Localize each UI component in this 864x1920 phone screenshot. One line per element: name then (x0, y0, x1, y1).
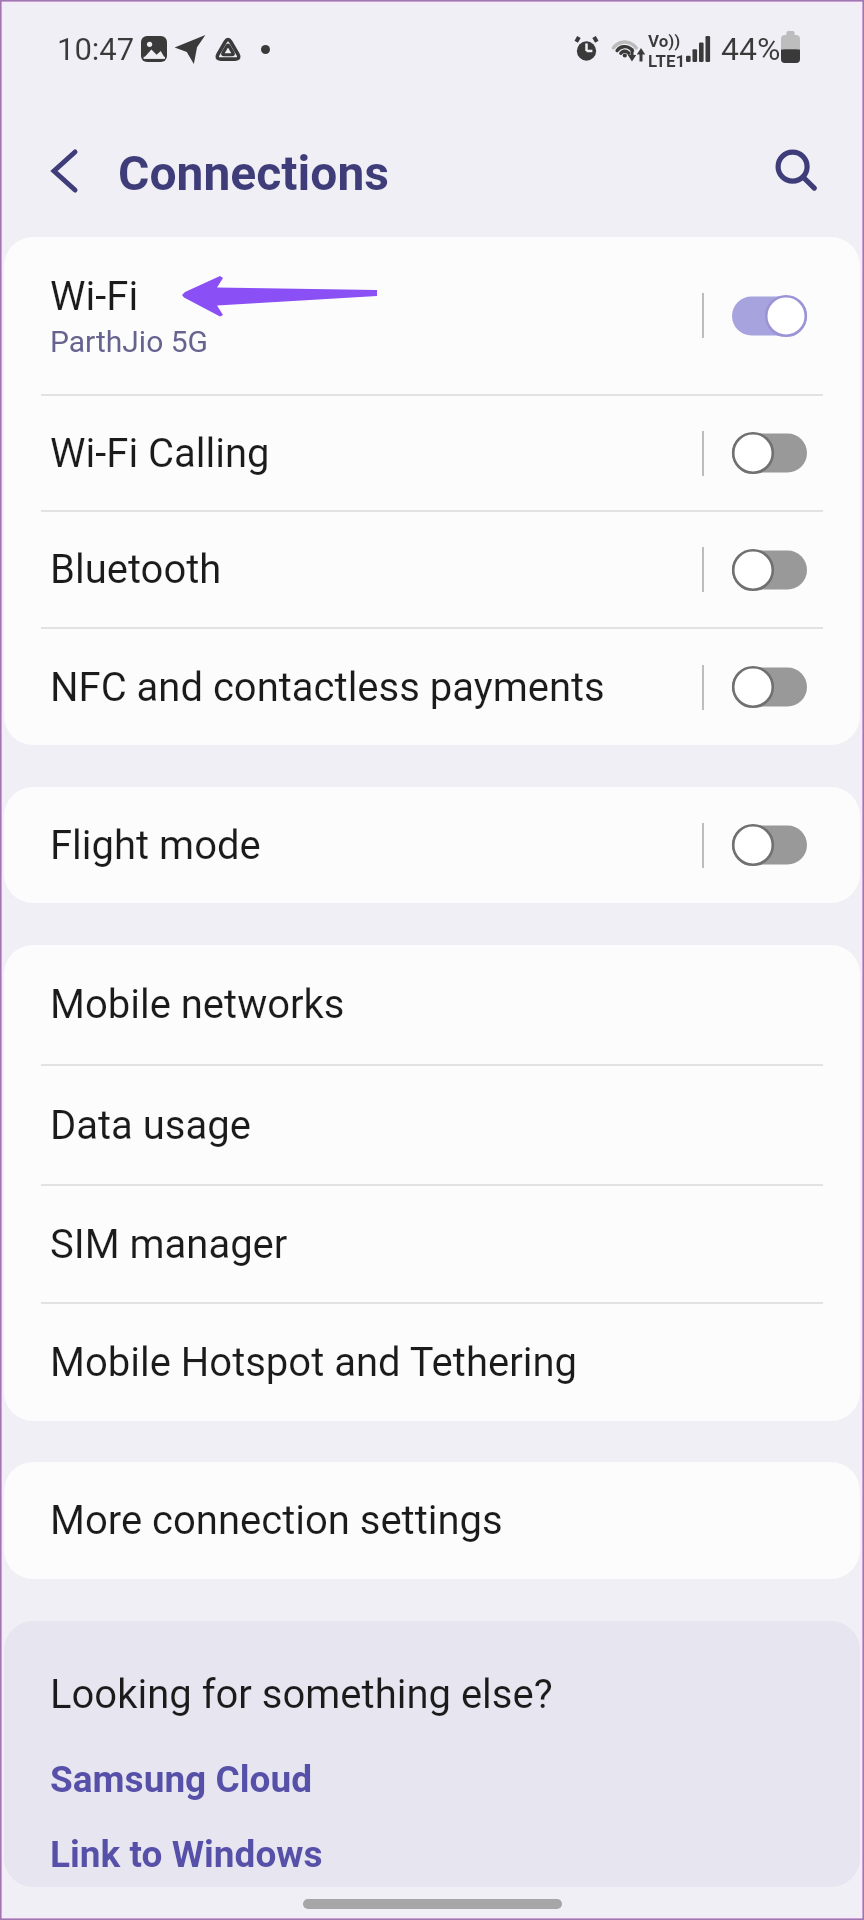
button[interactable]: Wi-Fi Calling (4, 396, 860, 510)
button[interactable]: Data usage (4, 1066, 860, 1184)
button[interactable]: Switch off (732, 548, 807, 592)
staticText: Samsung Cloud (50, 1758, 312, 1801)
staticText: 44% (721, 30, 781, 68)
staticText: 10:47 (57, 31, 135, 67)
button[interactable]: Switch on (732, 294, 807, 338)
staticText: Flight mode (50, 822, 261, 869)
staticText: Wi-Fi (50, 273, 139, 320)
button[interactable]: Samsung Cloud (4, 1752, 860, 1807)
button[interactable]: Back (25, 141, 85, 201)
button[interactable]: Flight mode (4, 787, 860, 903)
staticText: LTE1 (648, 51, 686, 71)
button[interactable]: Mobile networks (4, 945, 860, 1064)
staticText: Connections (118, 145, 390, 201)
button[interactable]: Search (760, 136, 832, 208)
staticText: Vo)) (648, 31, 681, 51)
button[interactable]: Link to Windows (4, 1827, 860, 1882)
button[interactable]: Switch off (732, 665, 807, 709)
button[interactable]: SIM manager (4, 1186, 860, 1302)
button[interactable]: Wi-Fi (4, 237, 860, 394)
button[interactable]: Switch off (732, 823, 807, 867)
staticText: Mobile networks (50, 981, 345, 1028)
staticText: Mobile Hotspot and Tethering (50, 1339, 577, 1386)
staticText: More connection settings (50, 1497, 503, 1544)
staticText: Bluetooth (50, 546, 222, 593)
button[interactable]: Mobile Hotspot and Tethering (4, 1304, 860, 1421)
staticText: Wi-Fi Calling (50, 430, 270, 477)
button[interactable]: Bluetooth (4, 512, 860, 627)
staticText: Link to Windows (50, 1833, 323, 1876)
staticText: Looking for something else? (50, 1671, 553, 1718)
staticText: NFC and contactless payments (50, 664, 605, 711)
staticText: ParthJio 5G (50, 324, 209, 359)
button[interactable]: More connection settings (4, 1462, 860, 1579)
staticText: SIM manager (50, 1221, 288, 1268)
button[interactable]: NFC and contactless payments (4, 629, 860, 745)
button[interactable]: Switch off (732, 431, 807, 475)
staticText: Data usage (50, 1102, 251, 1149)
